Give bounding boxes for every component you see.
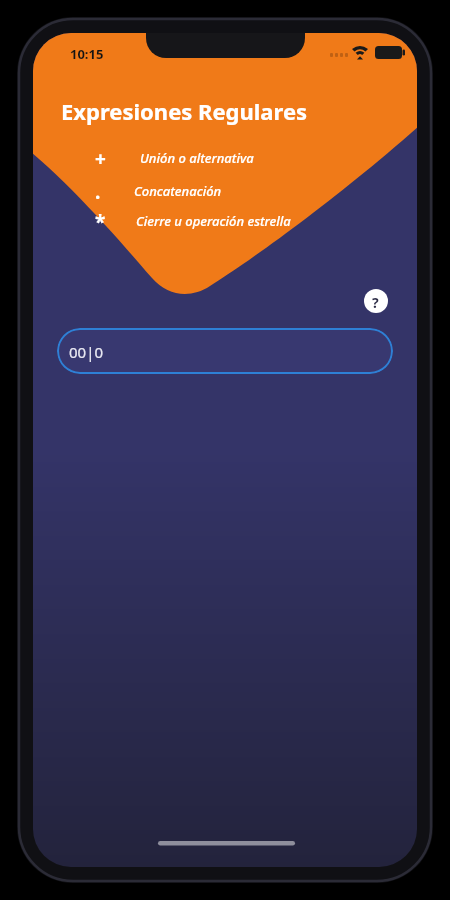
button[interactable]: Ayuda <box>364 289 388 313</box>
staticText: Cierre u operación estrella <box>136 212 291 230</box>
staticText: . <box>95 179 101 205</box>
staticText: 10:15 <box>70 45 104 63</box>
staticText: 00|0 <box>69 342 104 362</box>
staticText: Unión o alternativa <box>140 149 254 167</box>
staticText: * <box>95 209 106 235</box>
staticText: Expresiones Regulares <box>61 96 308 126</box>
staticText: ? <box>372 293 379 312</box>
button[interactable]: 00|0 <box>57 328 393 374</box>
staticText: Concatenación <box>134 182 222 200</box>
staticText: + <box>95 146 106 172</box>
